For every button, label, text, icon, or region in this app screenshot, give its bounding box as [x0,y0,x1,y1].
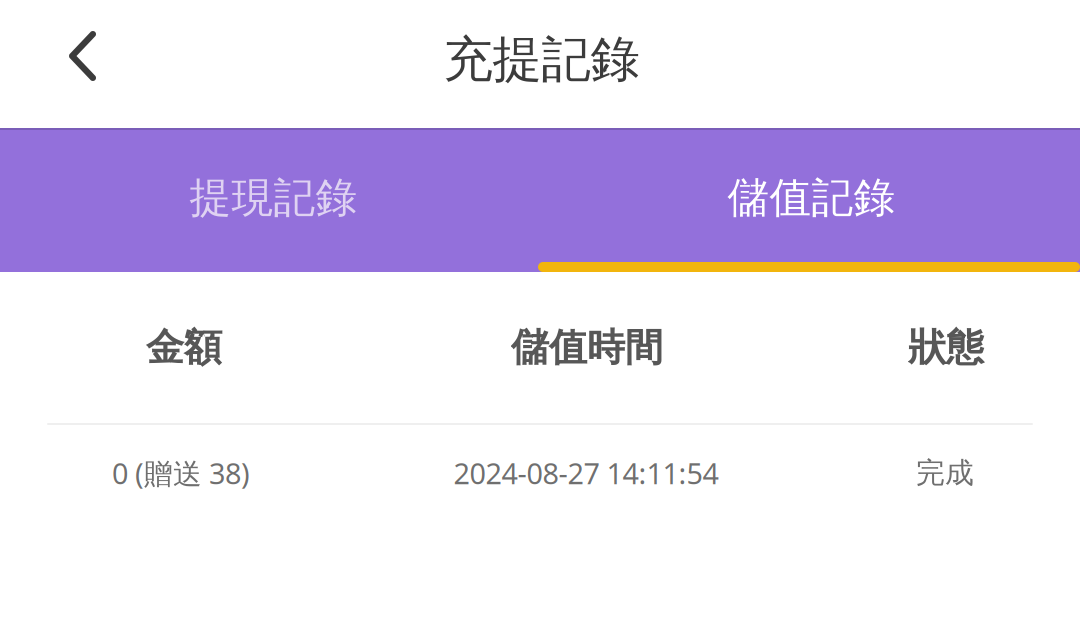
button[interactable]: Back [0,0,140,128]
staticText: 充提記錄 [443,28,639,90]
button[interactable]: 提現記錄 [0,128,540,272]
staticText: 金額 [146,324,222,371]
staticText: 儲值時間 [511,324,663,371]
button[interactable]: 儲值記錄 [540,128,1080,272]
staticText: 2024-08-27 14:11:54 [453,453,718,493]
staticText: 狀態 [908,324,984,371]
staticText: 儲值記錄 [727,172,895,224]
staticText: 0 (贈送 38) [112,453,250,493]
staticText: 提現記錄 [189,172,357,224]
staticText: 完成 [916,455,974,491]
